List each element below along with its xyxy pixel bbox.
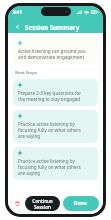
staticText: the meeting to stay engaged — [18, 96, 81, 102]
button[interactable]: Practice active listening by — [13, 147, 98, 180]
staticText: and demonstrate engagement — [18, 54, 85, 60]
staticText: Done — [74, 200, 88, 207]
staticText: Prepare 2-3 key questions for — [18, 90, 82, 96]
staticText: Continue — [32, 198, 53, 204]
button[interactable]: Back — [13, 22, 23, 32]
button[interactable]: Continue — [25, 196, 60, 211]
staticText: focusing fully on what others — [18, 127, 81, 133]
staticText: Session Summary — [25, 23, 80, 31]
staticText: focusing fully on what others — [18, 164, 81, 170]
staticText: are saying — [18, 170, 41, 176]
button[interactable]: Done — [63, 196, 99, 211]
button[interactable]: Delete — [12, 198, 23, 209]
button[interactable]: Prepare 2-3 key questions for — [13, 79, 98, 106]
staticText: Practice active listening by — [18, 158, 75, 164]
staticText: Practice active listening by — [18, 121, 75, 127]
staticText: Active listening can ground you — [18, 48, 86, 54]
staticText: Next Steps — [15, 70, 37, 76]
staticText: 9:41 — [13, 9, 22, 15]
staticText: are saying — [18, 133, 41, 139]
button[interactable]: Practice active listening by — [13, 110, 98, 143]
button[interactable]: Active listening can ground you — [13, 37, 98, 64]
staticText: Session — [34, 204, 51, 210]
